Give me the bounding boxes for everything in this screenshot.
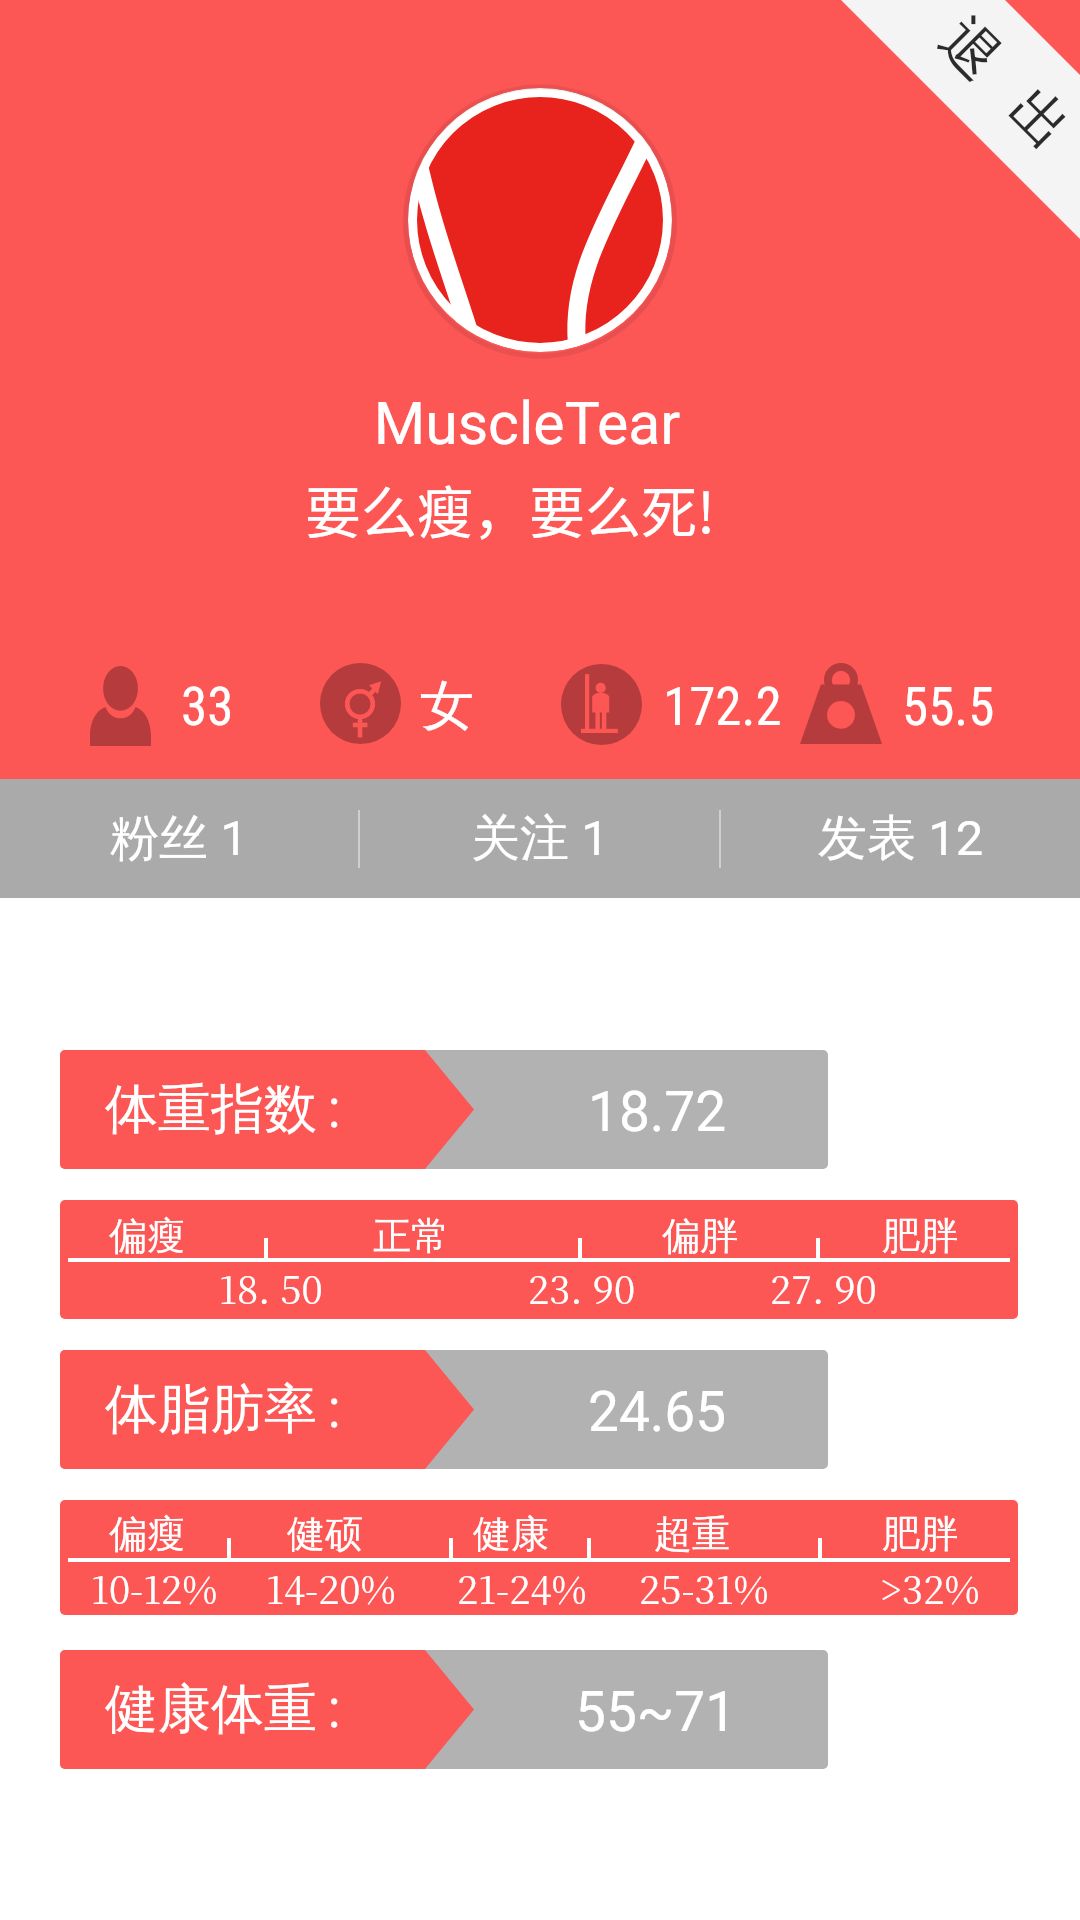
staticText: 健硕 — [287, 1510, 363, 1558]
staticText: 要么瘦，要么死! — [0, 468, 1050, 549]
staticText: 超重 — [654, 1510, 730, 1558]
button[interactable]: 关注 1 — [360, 779, 719, 898]
button[interactable]: 退出 — [883, 0, 1080, 216]
staticText: 172.2 — [663, 676, 782, 738]
staticText: 21-24% — [457, 1560, 587, 1615]
staticText: 24.65 — [588, 1380, 727, 1444]
staticText: >32% — [880, 1560, 980, 1615]
staticText: 33 — [181, 676, 234, 738]
staticText: 健康体重 : — [105, 1676, 341, 1743]
staticText: 55.5 — [902, 676, 995, 738]
staticText: 10-12% — [91, 1560, 218, 1615]
staticText: 发表 12 — [818, 808, 984, 870]
staticText: 肥胖 — [882, 1510, 958, 1558]
staticText: 粉丝 1 — [110, 808, 248, 870]
staticText: 偏胖 — [662, 1212, 738, 1260]
staticText: 女 — [420, 672, 474, 740]
staticText: 25-31% — [639, 1560, 769, 1615]
button[interactable]: 健康体重 : — [60, 1650, 828, 1769]
staticText: 23. 90 — [528, 1260, 636, 1315]
staticText: 正常 — [373, 1212, 449, 1260]
staticText: 18. 50 — [219, 1260, 323, 1315]
button[interactable]: 粉丝 1 — [0, 779, 358, 898]
staticText: 偏瘦 — [109, 1510, 185, 1558]
staticText: MuscleTear — [0, 389, 1067, 458]
button[interactable]: 体脂肪率 : — [60, 1350, 828, 1469]
staticText: 肥胖 — [882, 1212, 958, 1260]
button[interactable]: 体重指数 : — [60, 1050, 828, 1169]
staticText: 退 出 — [925, 5, 1080, 174]
staticText: 18.72 — [588, 1080, 727, 1144]
staticText: 偏瘦 — [109, 1212, 185, 1260]
staticText: 健康 — [473, 1510, 549, 1558]
staticText: 关注 1 — [471, 808, 609, 870]
staticText: 14-20% — [266, 1560, 396, 1615]
button[interactable]: 发表 12 — [721, 779, 1080, 898]
staticText: 体重指数 : — [105, 1076, 341, 1143]
staticText: 体脂肪率 : — [105, 1376, 341, 1443]
staticText: 27. 90 — [770, 1260, 877, 1315]
staticText: 55~71 — [575, 1680, 737, 1744]
